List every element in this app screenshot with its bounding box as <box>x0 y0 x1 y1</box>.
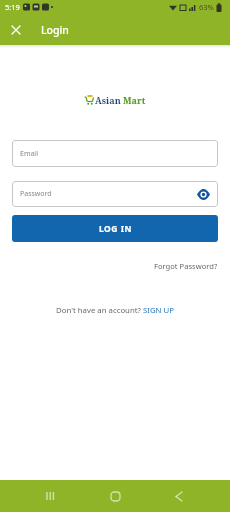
staticText: 5:19 <box>5 2 20 12</box>
staticText: Login <box>41 23 69 37</box>
button[interactable]: Email <box>12 140 218 167</box>
staticText: Asian <box>95 94 121 106</box>
staticText: Password <box>20 189 52 199</box>
button[interactable] <box>37 483 63 509</box>
staticText: LOG IN <box>99 223 132 235</box>
button[interactable]: Forgot Password? <box>154 261 218 271</box>
staticText: Email <box>20 149 38 159</box>
button[interactable]: Password <box>12 181 218 207</box>
button[interactable] <box>102 483 128 509</box>
staticText: Mart <box>123 94 146 106</box>
button[interactable]: Don't have an account? SIGN UP <box>56 305 174 316</box>
button[interactable] <box>166 483 192 509</box>
button[interactable]: LOG IN <box>12 215 218 242</box>
button[interactable] <box>0 14 31 45</box>
staticText: 63% <box>199 2 214 12</box>
